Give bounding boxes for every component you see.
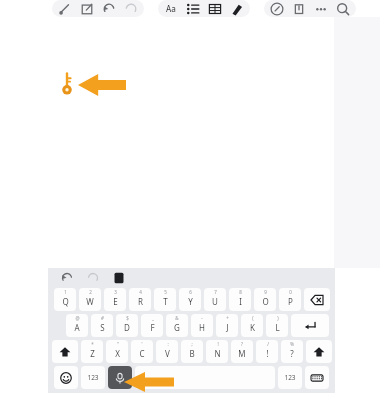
button[interactable]: $ [116,314,138,337]
staticText: + [226,315,229,321]
button[interactable]: " [106,340,128,363]
staticText: 9 [264,289,267,295]
button[interactable]: 7 [204,288,226,311]
staticText: Y [188,296,193,307]
button[interactable]: Shift [306,340,332,363]
staticText: Z [90,348,95,359]
staticText: K [250,322,255,333]
staticText: 5 [164,289,167,295]
button[interactable]: Clipboard [108,268,130,288]
button[interactable]: Undo [98,0,120,17]
staticText: ! [266,348,269,359]
button[interactable]: Undo [56,268,78,288]
button[interactable]: 8 [229,288,251,311]
staticText: U [212,296,218,307]
button[interactable]: 123 [81,366,105,389]
button[interactable]: Export [76,0,98,17]
button[interactable]: Switch keyboard [305,366,329,389]
button[interactable]: ! [206,340,228,363]
staticText: 6 [189,289,192,295]
staticText: * [91,341,94,347]
staticText: I [239,296,242,307]
staticText: $ [126,315,129,321]
button[interactable]: Emoji [54,366,78,389]
button[interactable]: # [91,314,113,337]
button[interactable]: Voice input [108,366,132,389]
staticText: M [238,348,246,359]
button[interactable]: ) [266,314,288,337]
staticText: ! [217,341,219,347]
staticText: J [226,322,229,333]
staticText: 8 [239,289,242,295]
button[interactable]: Redo [120,0,142,17]
button[interactable]: / [256,340,278,363]
button[interactable]: 123 [278,366,302,389]
button[interactable]: + [216,314,238,337]
staticText: 2 [89,289,92,295]
button[interactable]: : [156,340,178,363]
button[interactable]: % [281,340,303,363]
button[interactable]: More options [310,0,332,17]
button[interactable]: 1 [54,288,76,311]
button[interactable]: 3 [104,288,126,311]
button[interactable]: Password field [60,73,74,97]
staticText: & [175,315,179,321]
staticText: S [100,322,105,333]
staticText: @ [75,315,80,321]
staticText: ) [277,315,279,321]
staticText: 123 [284,373,296,382]
button[interactable]: Redo [82,268,104,288]
button[interactable]: ; [181,340,203,363]
staticText: P [288,296,293,307]
button[interactable]: 4 [129,288,151,311]
button[interactable]: 5 [154,288,176,311]
button[interactable]: Aa [160,0,182,17]
button[interactable]: Share [288,0,310,17]
staticText: ; [191,341,193,347]
button[interactable]: * [81,340,103,363]
button[interactable]: ' [131,340,153,363]
staticText: ' [141,341,143,347]
button[interactable]: Space [135,366,275,389]
staticText: Q [62,296,69,307]
button[interactable]: ( [241,314,263,337]
button[interactable]: Pen [226,0,248,17]
button[interactable]: ? [231,340,253,363]
button[interactable]: 2 [79,288,101,311]
button[interactable]: _ [141,314,163,337]
staticText: X [115,348,120,359]
staticText: N [214,348,221,359]
staticText: 3 [114,289,117,295]
staticText: % [290,341,294,347]
staticText: ? [290,348,294,359]
button[interactable]: Select [54,0,76,17]
staticText: R [138,296,143,307]
button[interactable]: 9 [254,288,276,311]
staticText: A [74,322,80,333]
staticText: C [139,348,145,359]
button[interactable]: & [166,314,188,337]
button[interactable]: 6 [179,288,201,311]
staticText: 7 [214,289,217,295]
button[interactable]: Shift [52,340,78,363]
button[interactable]: Backspace [304,288,330,311]
staticText: W [86,296,94,307]
staticText: / [267,341,269,347]
button[interactable]: Attach [266,0,288,17]
button[interactable]: Enter [291,314,329,337]
staticText: G [174,322,180,333]
staticText: ? [241,341,243,347]
button[interactable]: List format [182,0,204,17]
staticText: F [150,322,155,333]
staticText: _ [152,315,154,321]
button[interactable]: 0 [279,288,301,311]
button[interactable]: @ [66,314,88,337]
staticText: 4 [139,289,142,295]
staticText: " [117,341,119,347]
staticText: ( [252,315,254,321]
staticText: - [201,315,203,321]
staticText: 0 [289,289,292,295]
button[interactable]: - [191,314,213,337]
button[interactable]: Table [204,0,226,17]
button[interactable]: Search [332,0,354,17]
